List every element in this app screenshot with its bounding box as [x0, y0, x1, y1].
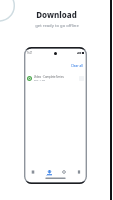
button[interactable]: Home	[25, 170, 41, 180]
staticText: Clear all	[71, 64, 83, 68]
button[interactable]: Clear all	[71, 64, 83, 68]
staticText: 9:41	[27, 51, 33, 55]
button[interactable]: Downloads	[41, 170, 56, 180]
staticText: 65% · 1 GB	[34, 79, 45, 82]
staticText: Download	[36, 9, 77, 20]
button[interactable]: Account	[71, 170, 86, 180]
staticText: Video · Complete Series	[34, 75, 64, 79]
button[interactable]: Video · Complete Series	[24, 75, 87, 82]
staticText: get ready to go offline	[35, 23, 79, 29]
button[interactable]: Search	[56, 170, 71, 180]
